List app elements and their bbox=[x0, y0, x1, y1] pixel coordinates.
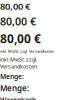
staticText: inkl. MwSt. zzgl. Versandkosten bbox=[0, 48, 54, 54]
staticText: inkl. MwSt. zzgl. Versandkosten bbox=[0, 56, 37, 70]
staticText: Warenkorb bbox=[0, 95, 36, 100]
staticText: Menge: bbox=[0, 72, 24, 81]
staticText: 80,00 € bbox=[0, 0, 30, 12]
staticText: Menge: bbox=[0, 83, 29, 93]
staticText: 80,00 € bbox=[0, 14, 36, 29]
staticText: 80,00 € bbox=[0, 31, 41, 46]
